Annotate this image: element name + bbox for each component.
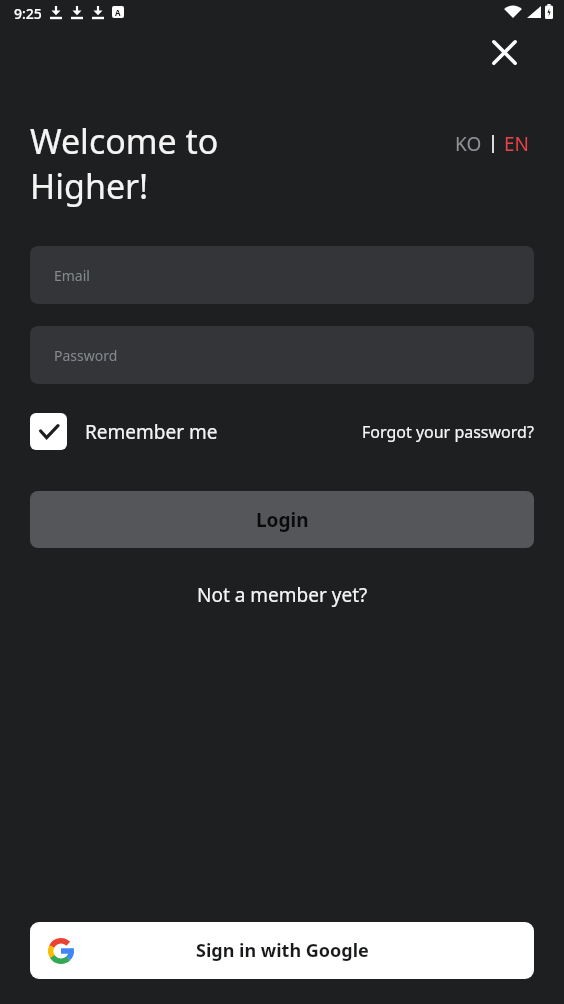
- button[interactable]: Forgot your password?: [362, 421, 534, 443]
- button[interactable]: Not a member yet?: [197, 582, 368, 608]
- staticText: 9:25: [14, 4, 42, 23]
- staticText: A: [115, 7, 121, 18]
- staticText: Sign in with Google: [196, 938, 369, 963]
- staticText: Login: [256, 507, 309, 533]
- button[interactable]: Sign in with Google: [30, 922, 534, 979]
- button[interactable]: Email: [30, 246, 534, 304]
- staticText: Not a member yet?: [197, 582, 368, 608]
- staticText: Welcome to Higher!: [30, 118, 219, 209]
- button[interactable]: Password: [30, 326, 534, 384]
- button[interactable]: Remember me: [30, 413, 218, 450]
- button[interactable]: [474, 28, 534, 76]
- staticText: Password: [54, 346, 118, 365]
- staticText: EN: [504, 131, 530, 157]
- staticText: Forgot your password?: [362, 421, 534, 443]
- staticText: Email: [54, 266, 90, 285]
- staticText: Remember me: [85, 419, 218, 445]
- button[interactable]: EN: [500, 127, 534, 161]
- button[interactable]: Login: [30, 491, 534, 548]
- button[interactable]: KO: [451, 127, 486, 161]
- staticText: KO: [455, 131, 482, 157]
